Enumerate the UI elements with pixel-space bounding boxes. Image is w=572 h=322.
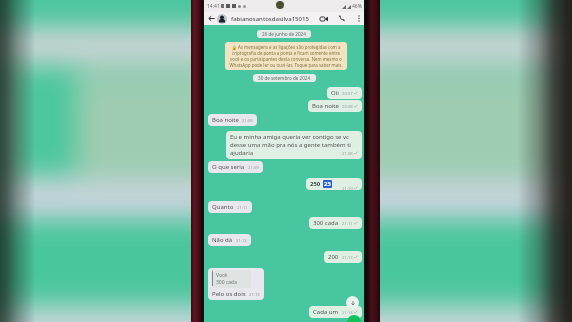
staticText: Eu e minha amiga queria ver contigo se v… — [230, 133, 358, 157]
button[interactable]: Eu e minha amiga queria ver contigo se v… — [226, 131, 362, 159]
staticText: 20:58 — [342, 104, 353, 110]
staticText: 21:10 — [342, 186, 353, 190]
staticText: 21:12 — [236, 238, 247, 244]
staticText: 200 — [328, 253, 339, 261]
staticText: Pelo os dois — [212, 290, 246, 298]
staticText: Não dá — [212, 236, 233, 244]
staticText: 21:13 — [342, 255, 353, 261]
button[interactable]: O que seria — [208, 161, 263, 173]
button[interactable]: Call — [335, 12, 348, 25]
button[interactable]: Oii — [327, 87, 362, 99]
staticText: Quanto — [212, 203, 234, 211]
button[interactable]: Boa noite — [208, 114, 257, 126]
staticText: 30 de setembro de 2024 — [258, 75, 311, 81]
staticText: 🔒 As mensagens e as ligações são protegi… — [229, 44, 343, 68]
staticText: 21:08 — [342, 151, 353, 157]
staticText: 250 — [310, 180, 321, 188]
staticText: 25 — [324, 180, 331, 188]
staticText: 21:06 — [242, 118, 253, 124]
staticText: 26 de junho de 2024 — [262, 31, 306, 37]
button[interactable]: 30 de setembro de 2024 — [253, 74, 316, 82]
staticText: Cada um — [313, 308, 339, 316]
button[interactable]: Scroll to bottom — [346, 296, 359, 309]
staticText: 14:41 — [207, 3, 220, 10]
button[interactable]: 300 cada — [309, 217, 362, 229]
staticText: 21:13 — [249, 292, 260, 298]
staticText: Boa noite — [212, 116, 239, 124]
button[interactable]: Não dá — [208, 234, 251, 246]
button[interactable]: 250 — [306, 178, 362, 190]
staticText: Boa noite — [312, 102, 339, 110]
button[interactable]: Contact photo — [217, 14, 227, 24]
button[interactable]: Cada um — [309, 306, 362, 318]
button[interactable]: More options — [353, 12, 364, 25]
button[interactable]: Quanto — [208, 201, 252, 213]
staticText: 300 cada — [216, 279, 237, 286]
staticText: 300 cada — [313, 219, 339, 227]
button[interactable]: Voice message — [347, 315, 361, 322]
staticText: 21:11 — [237, 205, 248, 211]
staticText: 20:57 — [342, 91, 353, 97]
button[interactable]: Video call — [317, 12, 331, 25]
button[interactable]: Back — [206, 12, 217, 25]
button[interactable]: 26 de junho de 2024 — [257, 30, 311, 38]
staticText: 46% — [352, 3, 362, 10]
button[interactable]: Boa noite — [308, 100, 362, 112]
staticText: Você — [216, 272, 228, 279]
staticText: 21:14 — [342, 310, 353, 316]
staticText: O que seria — [212, 163, 245, 171]
staticText: 21:11 — [342, 221, 353, 227]
staticText: 21:09 — [248, 165, 259, 171]
button[interactable]: Você — [208, 268, 264, 300]
button[interactable]: 🔒 As mensagens e as ligações são protegi… — [225, 42, 347, 70]
staticText: fabianosantosdasilva15015 — [231, 15, 309, 23]
staticText: Oii — [331, 89, 339, 97]
button[interactable]: 200 — [324, 251, 362, 263]
